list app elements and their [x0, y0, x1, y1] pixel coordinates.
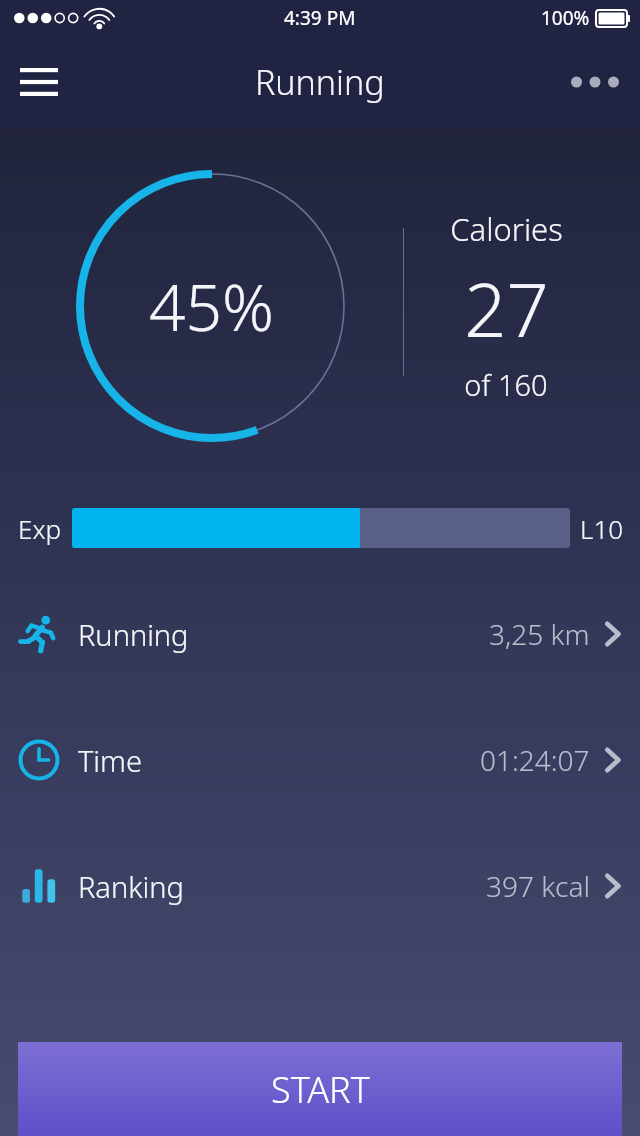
- staticText: Exp: [18, 511, 62, 546]
- button[interactable]: Time: [0, 730, 640, 790]
- staticText: 45%: [149, 263, 275, 350]
- button[interactable]: Exp: [0, 508, 640, 548]
- staticText: 27: [464, 258, 549, 359]
- staticText: 3,25 km: [489, 615, 590, 653]
- staticText: START: [271, 1065, 370, 1114]
- button[interactable]: Menu: [6, 49, 72, 115]
- staticText: Calories: [450, 208, 563, 250]
- staticText: 100%: [541, 5, 590, 31]
- staticText: Ranking: [78, 867, 184, 906]
- button[interactable]: More options: [564, 51, 626, 113]
- staticText: Running: [255, 59, 385, 105]
- staticText: 01:24:07: [480, 741, 590, 779]
- staticText: 4:39 PM: [284, 5, 356, 31]
- button[interactable]: START: [18, 1042, 622, 1136]
- button[interactable]: Ranking: [0, 856, 640, 916]
- staticText: L10: [580, 511, 624, 546]
- button[interactable]: Running: [0, 604, 640, 664]
- staticText: 397 kcal: [486, 867, 590, 905]
- staticText: Running: [78, 615, 189, 654]
- staticText: Time: [78, 741, 143, 780]
- staticText: of 160: [464, 365, 548, 404]
